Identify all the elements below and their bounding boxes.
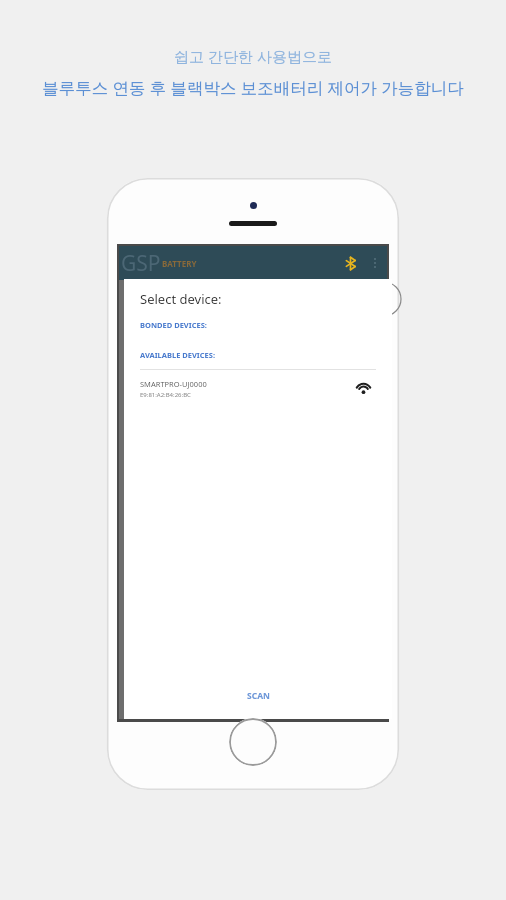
button[interactable]: Bluetooth xyxy=(339,252,361,274)
staticText: Select device: xyxy=(140,290,222,308)
staticText: AVAILABLE DEVICES: xyxy=(140,350,216,360)
staticText: 쉽고 간단한 사용법으로 xyxy=(174,46,332,66)
button[interactable]: SCAN xyxy=(124,679,392,713)
staticText: BONDED DEVICES: xyxy=(140,320,207,330)
button[interactable]: More options xyxy=(366,248,384,278)
staticText: 블루투스 연동 후 블랙박스 보조배터리 제어가 가능합니다 xyxy=(42,76,464,99)
staticText: SMARTPRO-UJ0000 xyxy=(140,379,207,389)
staticText: GSP xyxy=(121,249,161,278)
staticText: SCAN xyxy=(247,690,270,702)
other: Home xyxy=(229,718,277,766)
staticText: E9:81:A2:B4:26:BC xyxy=(140,391,191,399)
button[interactable]: SMARTPRO-UJ0000 xyxy=(124,377,392,401)
staticText: BATTERY xyxy=(162,258,197,269)
